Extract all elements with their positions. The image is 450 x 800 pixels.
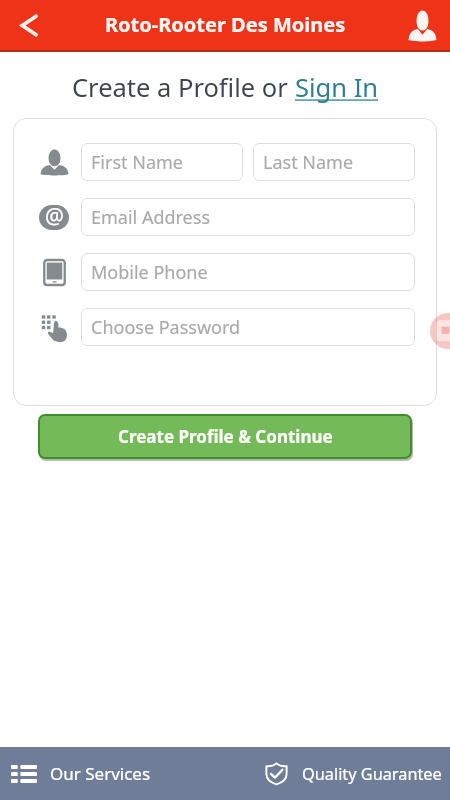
button[interactable]: Account	[400, 3, 444, 47]
staticText: Mobile Phone	[91, 260, 208, 285]
staticText: Last Name	[263, 150, 354, 175]
button[interactable]: First Name	[81, 143, 243, 181]
staticText: @	[45, 205, 64, 227]
button[interactable]: Back	[8, 4, 50, 46]
staticText: First Name	[91, 150, 183, 175]
staticText: Roto-Rooter Des Moines	[105, 11, 346, 38]
staticText: Quality Guarantee	[302, 763, 442, 785]
button[interactable]: Email Address	[81, 198, 415, 236]
button[interactable]: Last Name	[253, 143, 415, 181]
button[interactable]: Chat	[430, 313, 450, 349]
staticText: Create Profile & Continue	[118, 425, 333, 448]
button[interactable]: Mobile Phone	[81, 253, 415, 291]
button[interactable]: Choose Password	[81, 308, 415, 346]
staticText: Choose Password	[91, 315, 241, 340]
staticText: Create a Profile or	[72, 70, 295, 105]
button[interactable]: Quality Guarantee	[225, 747, 450, 800]
staticText: Email Address	[91, 205, 211, 230]
button[interactable]: Create Profile & Continue	[38, 414, 412, 459]
button[interactable]: Our Services	[0, 747, 225, 800]
staticText: Our Services	[50, 762, 151, 785]
button[interactable]: Sign In	[295, 70, 379, 105]
